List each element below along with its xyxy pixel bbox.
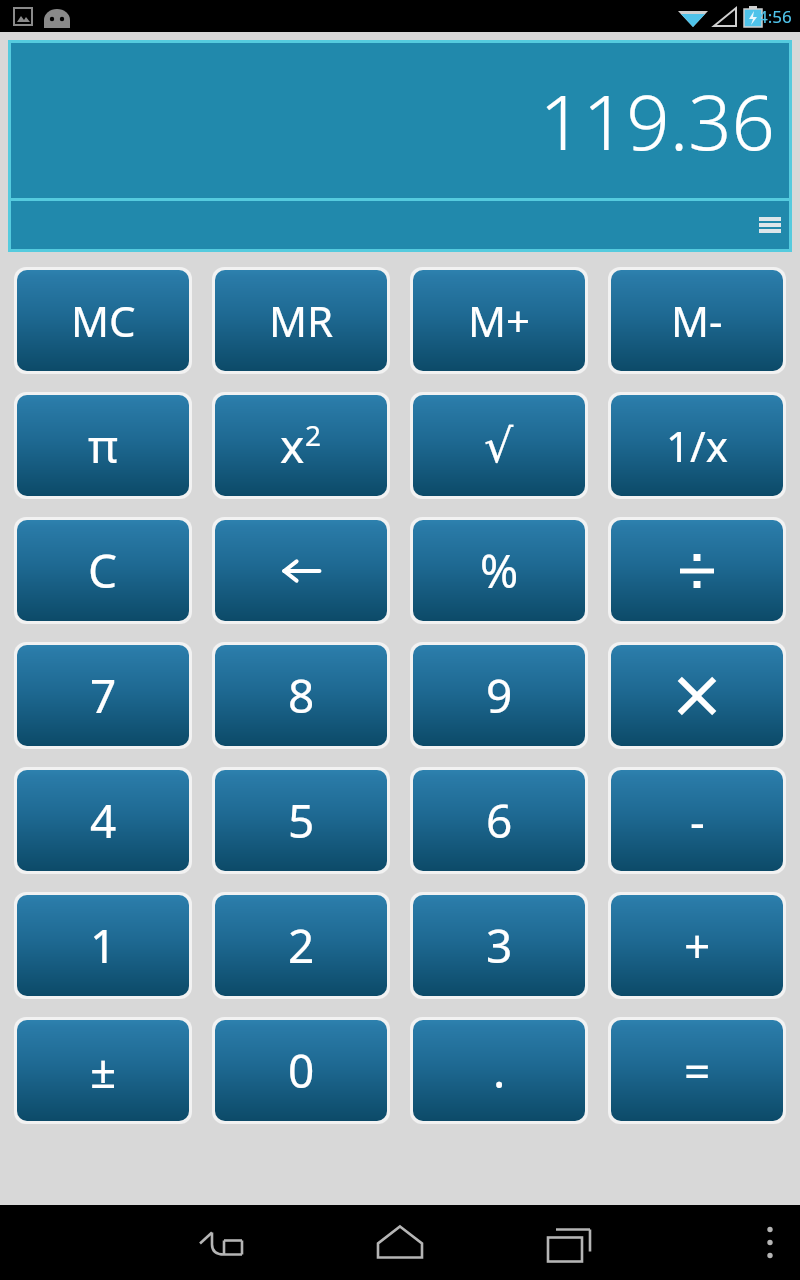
staticText: - xyxy=(690,789,705,852)
staticText: 1/x xyxy=(666,417,728,474)
staticText: ± xyxy=(90,1039,117,1102)
button[interactable] xyxy=(611,520,783,621)
staticText: 8 xyxy=(288,664,315,727)
button[interactable]: 9 xyxy=(413,645,585,746)
button[interactable]: M- xyxy=(611,270,783,371)
button[interactable]: 6 xyxy=(413,770,585,871)
staticText: x xyxy=(280,414,305,477)
button[interactable]: MC xyxy=(17,270,189,371)
button[interactable] xyxy=(611,645,783,746)
staticText: 0 xyxy=(288,1039,315,1102)
button[interactable]: % xyxy=(413,520,585,621)
staticText: 7 xyxy=(90,664,117,727)
button[interactable]: - xyxy=(611,770,783,871)
button[interactable]: M+ xyxy=(413,270,585,371)
staticText: 6 xyxy=(486,789,513,852)
staticText: + xyxy=(684,914,711,977)
staticText: 5 xyxy=(288,789,315,852)
staticText: C xyxy=(88,539,118,602)
staticText: . xyxy=(493,1039,506,1102)
staticText: MC xyxy=(71,292,136,349)
staticText: = xyxy=(684,1039,711,1102)
button[interactable]: 8 xyxy=(215,645,387,746)
staticText: 119.36 xyxy=(539,69,775,173)
button[interactable]: 1 xyxy=(17,895,189,996)
button[interactable] xyxy=(215,520,387,621)
button[interactable]: 4 xyxy=(17,770,189,871)
button[interactable]: + xyxy=(611,895,783,996)
button[interactable]: MR xyxy=(215,270,387,371)
button[interactable]: = xyxy=(611,1020,783,1121)
staticText: % xyxy=(480,539,519,602)
staticText: M- xyxy=(671,292,723,349)
staticText: 2 xyxy=(305,416,322,454)
staticText: MR xyxy=(269,292,334,349)
staticText: π xyxy=(88,414,119,477)
button[interactable]: x xyxy=(215,395,387,496)
button[interactable]: π xyxy=(17,395,189,496)
staticText: 9 xyxy=(486,664,513,727)
button[interactable]: ± xyxy=(17,1020,189,1121)
staticText: M+ xyxy=(468,292,531,349)
button[interactable]: Menu xyxy=(11,201,789,249)
button[interactable]: 7 xyxy=(17,645,189,746)
staticText: 2 xyxy=(288,914,315,977)
staticText: √ xyxy=(484,419,514,473)
button[interactable]: 5 xyxy=(215,770,387,871)
button[interactable]: 0 xyxy=(215,1020,387,1121)
button[interactable]: 1/x xyxy=(611,395,783,496)
staticText: 3 xyxy=(486,914,513,977)
button[interactable]: 3 xyxy=(413,895,585,996)
button[interactable]: √ xyxy=(413,395,585,496)
staticText: 4:56 xyxy=(758,5,792,28)
button[interactable]: . xyxy=(413,1020,585,1121)
staticText: 4 xyxy=(90,789,117,852)
button[interactable]: 2 xyxy=(215,895,387,996)
button[interactable]: C xyxy=(17,520,189,621)
staticText: 1 xyxy=(90,914,117,977)
